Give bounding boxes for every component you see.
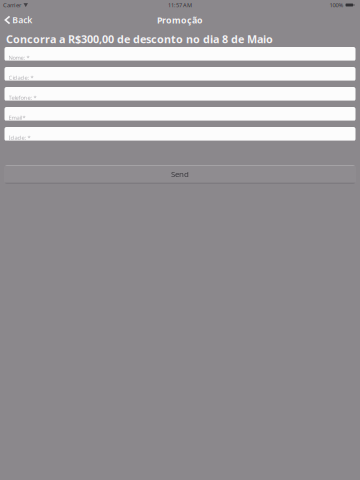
staticText: Promoção bbox=[157, 14, 203, 26]
staticText: Send bbox=[171, 169, 189, 179]
button[interactable]: Send bbox=[4, 165, 356, 184]
staticText: Email * bbox=[8, 114, 25, 121]
staticText: Back bbox=[12, 14, 32, 26]
button[interactable]: Back bbox=[0, 13, 36, 27]
staticText: Cidade: * bbox=[8, 74, 33, 81]
staticText: 100% bbox=[329, 1, 343, 9]
staticText: 11:57 AM bbox=[168, 1, 192, 9]
staticText: Concorra a R$300,00 de desconto no dia 8… bbox=[6, 32, 273, 46]
staticText: Nome: * bbox=[8, 54, 29, 61]
staticText: Idade: * bbox=[8, 134, 30, 141]
staticText: Carrier bbox=[3, 1, 21, 9]
staticText: Telefone: * bbox=[8, 94, 36, 101]
